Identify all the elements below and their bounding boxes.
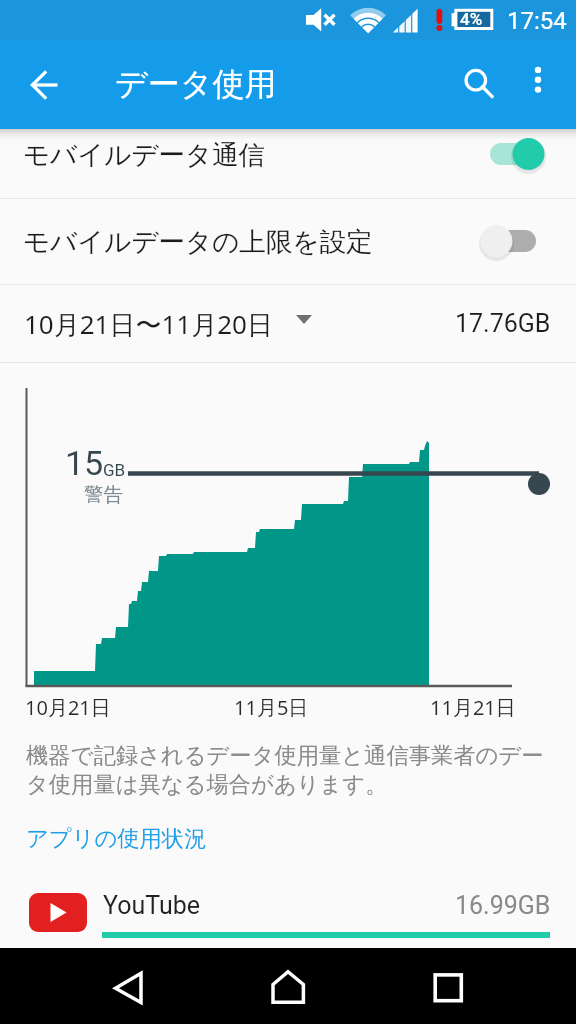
- staticText: 10月21日〜11月20日: [24, 306, 273, 342]
- staticText: データ使用: [115, 64, 277, 104]
- button[interactable]: Recents: [418, 958, 478, 1018]
- staticText: 17.76GB: [455, 309, 551, 338]
- staticText: 機器で記録されるデータ使用量と通信事業者のデータ使用量は異なる場合があります。: [26, 742, 548, 799]
- button[interactable]: YouTube: [0, 870, 576, 948]
- staticText: 15: [65, 443, 104, 483]
- staticText: YouTube: [103, 891, 201, 920]
- button[interactable]: Search: [451, 60, 501, 110]
- button[interactable]: Back: [98, 958, 158, 1018]
- staticText: 17:54: [507, 7, 567, 35]
- button[interactable]: モバイルデータの上限を設定: [0, 198, 576, 285]
- button[interactable]: More options: [513, 60, 563, 110]
- button[interactable]: Home: [258, 958, 318, 1018]
- staticText: アプリの使用状況: [26, 825, 207, 853]
- staticText: 警告: [84, 482, 123, 507]
- staticText: モバイルデータの上限を設定: [23, 225, 373, 258]
- button[interactable]: Back: [13, 60, 63, 110]
- button[interactable]: アプリの使用状況: [0, 820, 576, 860]
- button[interactable]: モバイルデータ通信: [0, 129, 576, 198]
- staticText: 11月21日: [430, 694, 516, 721]
- staticText: 11月5日: [234, 694, 309, 721]
- staticText: 16.99GB: [455, 891, 551, 920]
- staticText: GB: [103, 460, 126, 480]
- button[interactable]: 10月21日〜11月20日: [0, 285, 576, 362]
- staticText: 4%: [460, 9, 483, 29]
- staticText: 10月21日: [25, 694, 111, 721]
- staticText: モバイルデータ通信: [23, 138, 266, 171]
